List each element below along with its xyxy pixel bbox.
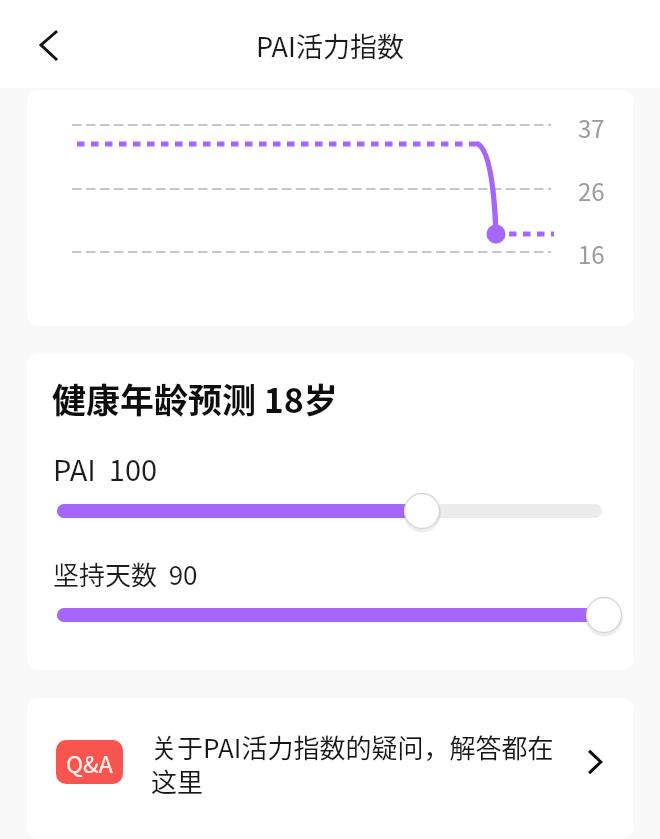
staticText: 26 (578, 173, 605, 208)
button[interactable]: Back (24, 22, 72, 70)
staticText: Q&A (66, 746, 113, 779)
other: Open Q&A (571, 738, 619, 786)
button[interactable]: Q&A (27, 698, 633, 839)
staticText: 37 (578, 110, 605, 145)
button[interactable] (27, 487, 633, 535)
staticText: 坚持天数 90 (53, 555, 198, 593)
staticText: 关于PAI活力指数的疑问，解答都在这里 (151, 728, 579, 800)
staticText: 健康年龄预测 18岁 (52, 374, 338, 423)
staticText: PAI活力指数 (256, 26, 404, 65)
button[interactable] (27, 591, 633, 639)
staticText: 16 (578, 236, 605, 271)
staticText: PAI 100 (53, 447, 158, 489)
